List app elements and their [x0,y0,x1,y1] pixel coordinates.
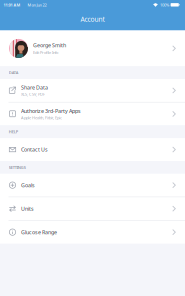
staticText: Edit Profile Info [33,50,58,55]
button[interactable]: Glucose Range [0,221,185,244]
staticText: Units [21,205,34,212]
button[interactable]: Contact Us [0,138,185,161]
staticText: XLS, CSV, PDF [21,92,45,97]
button[interactable]: George Smith [0,30,185,66]
staticText: Share Data [21,84,48,91]
staticText: 11:01 AM [3,2,20,7]
staticText: DATA [9,70,19,75]
staticText: Apple Health, Fitbit, Epic [21,115,62,120]
staticText: George Smith [33,42,66,49]
staticText: Contact Us [21,146,48,153]
staticText: Authorize 3rd-Party Apps [21,107,81,115]
staticText: HELP [9,129,18,134]
staticText: Goals [21,182,35,189]
button[interactable]: Share Data [0,79,185,102]
button[interactable]: Authorize 3rd-Party Apps [0,102,185,125]
button[interactable]: Units [0,197,185,220]
button[interactable]: Goals [0,174,185,197]
staticText: SETTINGS [9,165,26,170]
staticText: 100% [160,2,169,7]
staticText: Glucose Range [21,229,57,236]
staticText: Mon Jun 22 [27,2,46,7]
staticText: Account [80,15,104,24]
